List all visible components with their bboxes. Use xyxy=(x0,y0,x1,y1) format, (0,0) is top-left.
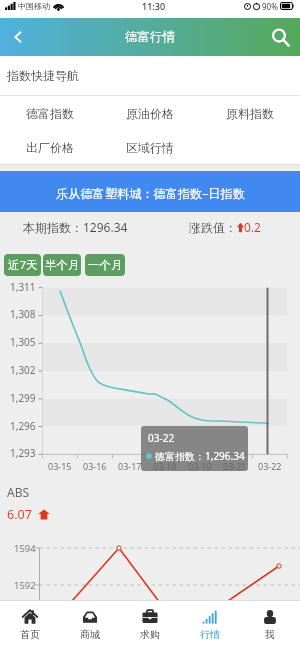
button[interactable]: 半个月 xyxy=(43,254,81,276)
staticText: 区域行情 xyxy=(126,140,174,155)
staticText: 0.2 xyxy=(244,219,261,235)
staticText: 德富指数 xyxy=(26,106,74,121)
button[interactable]: 首页 xyxy=(0,601,60,649)
button[interactable]: 区域行情 xyxy=(100,130,200,164)
button[interactable]: 一个月 xyxy=(85,254,125,276)
staticText: 德富行情 xyxy=(125,29,175,45)
staticText: 一个月 xyxy=(88,258,123,272)
staticText: 出厂价格 xyxy=(26,140,74,155)
button[interactable]: 德富指数 xyxy=(0,96,100,130)
staticText: 行情 xyxy=(200,628,220,641)
staticText: 1592 xyxy=(14,579,36,592)
staticText: 03-15 xyxy=(48,460,72,472)
staticText: 乐从德富塑料城：德富指数–日指数 xyxy=(56,185,245,202)
staticText: 1,296 xyxy=(10,419,36,433)
button[interactable]: 商城 xyxy=(60,601,120,649)
button[interactable]: 原油价格 xyxy=(100,96,200,130)
staticText: 半个月 xyxy=(45,258,80,272)
button[interactable]: 求购 xyxy=(120,601,180,649)
button[interactable]: 我 xyxy=(240,601,300,649)
staticText: 求购 xyxy=(140,628,160,641)
staticText: 1,293 xyxy=(10,446,36,460)
staticText: 03-22 xyxy=(258,460,282,472)
staticText: 03-16 xyxy=(83,460,107,472)
staticText: 1,311 xyxy=(10,280,36,294)
staticText: 涨跌值： xyxy=(189,220,237,235)
button[interactable]: 出厂价格 xyxy=(0,130,100,164)
staticText: 1,305 xyxy=(10,335,36,349)
staticText: 原油价格 xyxy=(126,106,174,121)
staticText: 首页 xyxy=(20,628,40,641)
staticText: 1,308 xyxy=(10,307,36,321)
staticText: 商城 xyxy=(80,628,100,641)
staticText: 1594 xyxy=(14,542,36,555)
button[interactable]: 近7天 xyxy=(4,254,41,276)
staticText: 03-19 xyxy=(188,460,212,472)
staticText: 本期指数：1296.34 xyxy=(23,219,128,235)
staticText: 我 xyxy=(265,628,275,641)
staticText: 90% xyxy=(262,1,278,12)
staticText: 03-21 xyxy=(223,460,247,472)
staticText: 11:30 xyxy=(142,0,166,12)
staticText: ABS xyxy=(7,484,30,500)
staticText: 1,299 xyxy=(10,391,36,405)
staticText: 03-17 xyxy=(118,460,142,472)
staticText: 指数快捷导航 xyxy=(7,68,79,83)
staticText: 03-18 xyxy=(153,460,177,472)
button[interactable]: Search xyxy=(260,18,300,56)
button[interactable]: 原料指数 xyxy=(200,96,300,130)
staticText: 德富指数：1,296.34 xyxy=(155,449,245,463)
staticText: 近7天 xyxy=(8,257,38,273)
staticText: 03-22 xyxy=(148,431,175,445)
staticText: 中国移动 xyxy=(18,1,50,11)
staticText: 原料指数 xyxy=(226,106,274,121)
staticText: 6.07 xyxy=(7,506,32,523)
button[interactable]: 行情 xyxy=(180,601,240,649)
staticText: 1,302 xyxy=(10,363,36,377)
button[interactable]: Back xyxy=(0,18,36,56)
